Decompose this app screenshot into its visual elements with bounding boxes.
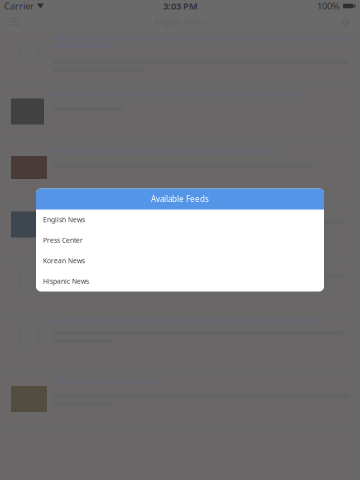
- staticText: Carrier: [4, 0, 34, 12]
- button[interactable]: Korean News: [36, 250, 324, 271]
- staticText: Hispanic News: [43, 277, 89, 286]
- staticText: Press Center: [43, 236, 83, 245]
- staticText: 3:03 PM: [163, 0, 198, 12]
- staticText: Available Feeds: [151, 194, 209, 204]
- button[interactable]: English News: [36, 209, 324, 230]
- staticText: English News: [43, 215, 85, 224]
- button[interactable]: Press Center: [36, 230, 324, 250]
- button[interactable]: Hispanic News: [36, 271, 324, 291]
- staticText: 100%: [317, 0, 340, 12]
- staticText: Korean News: [43, 256, 85, 265]
